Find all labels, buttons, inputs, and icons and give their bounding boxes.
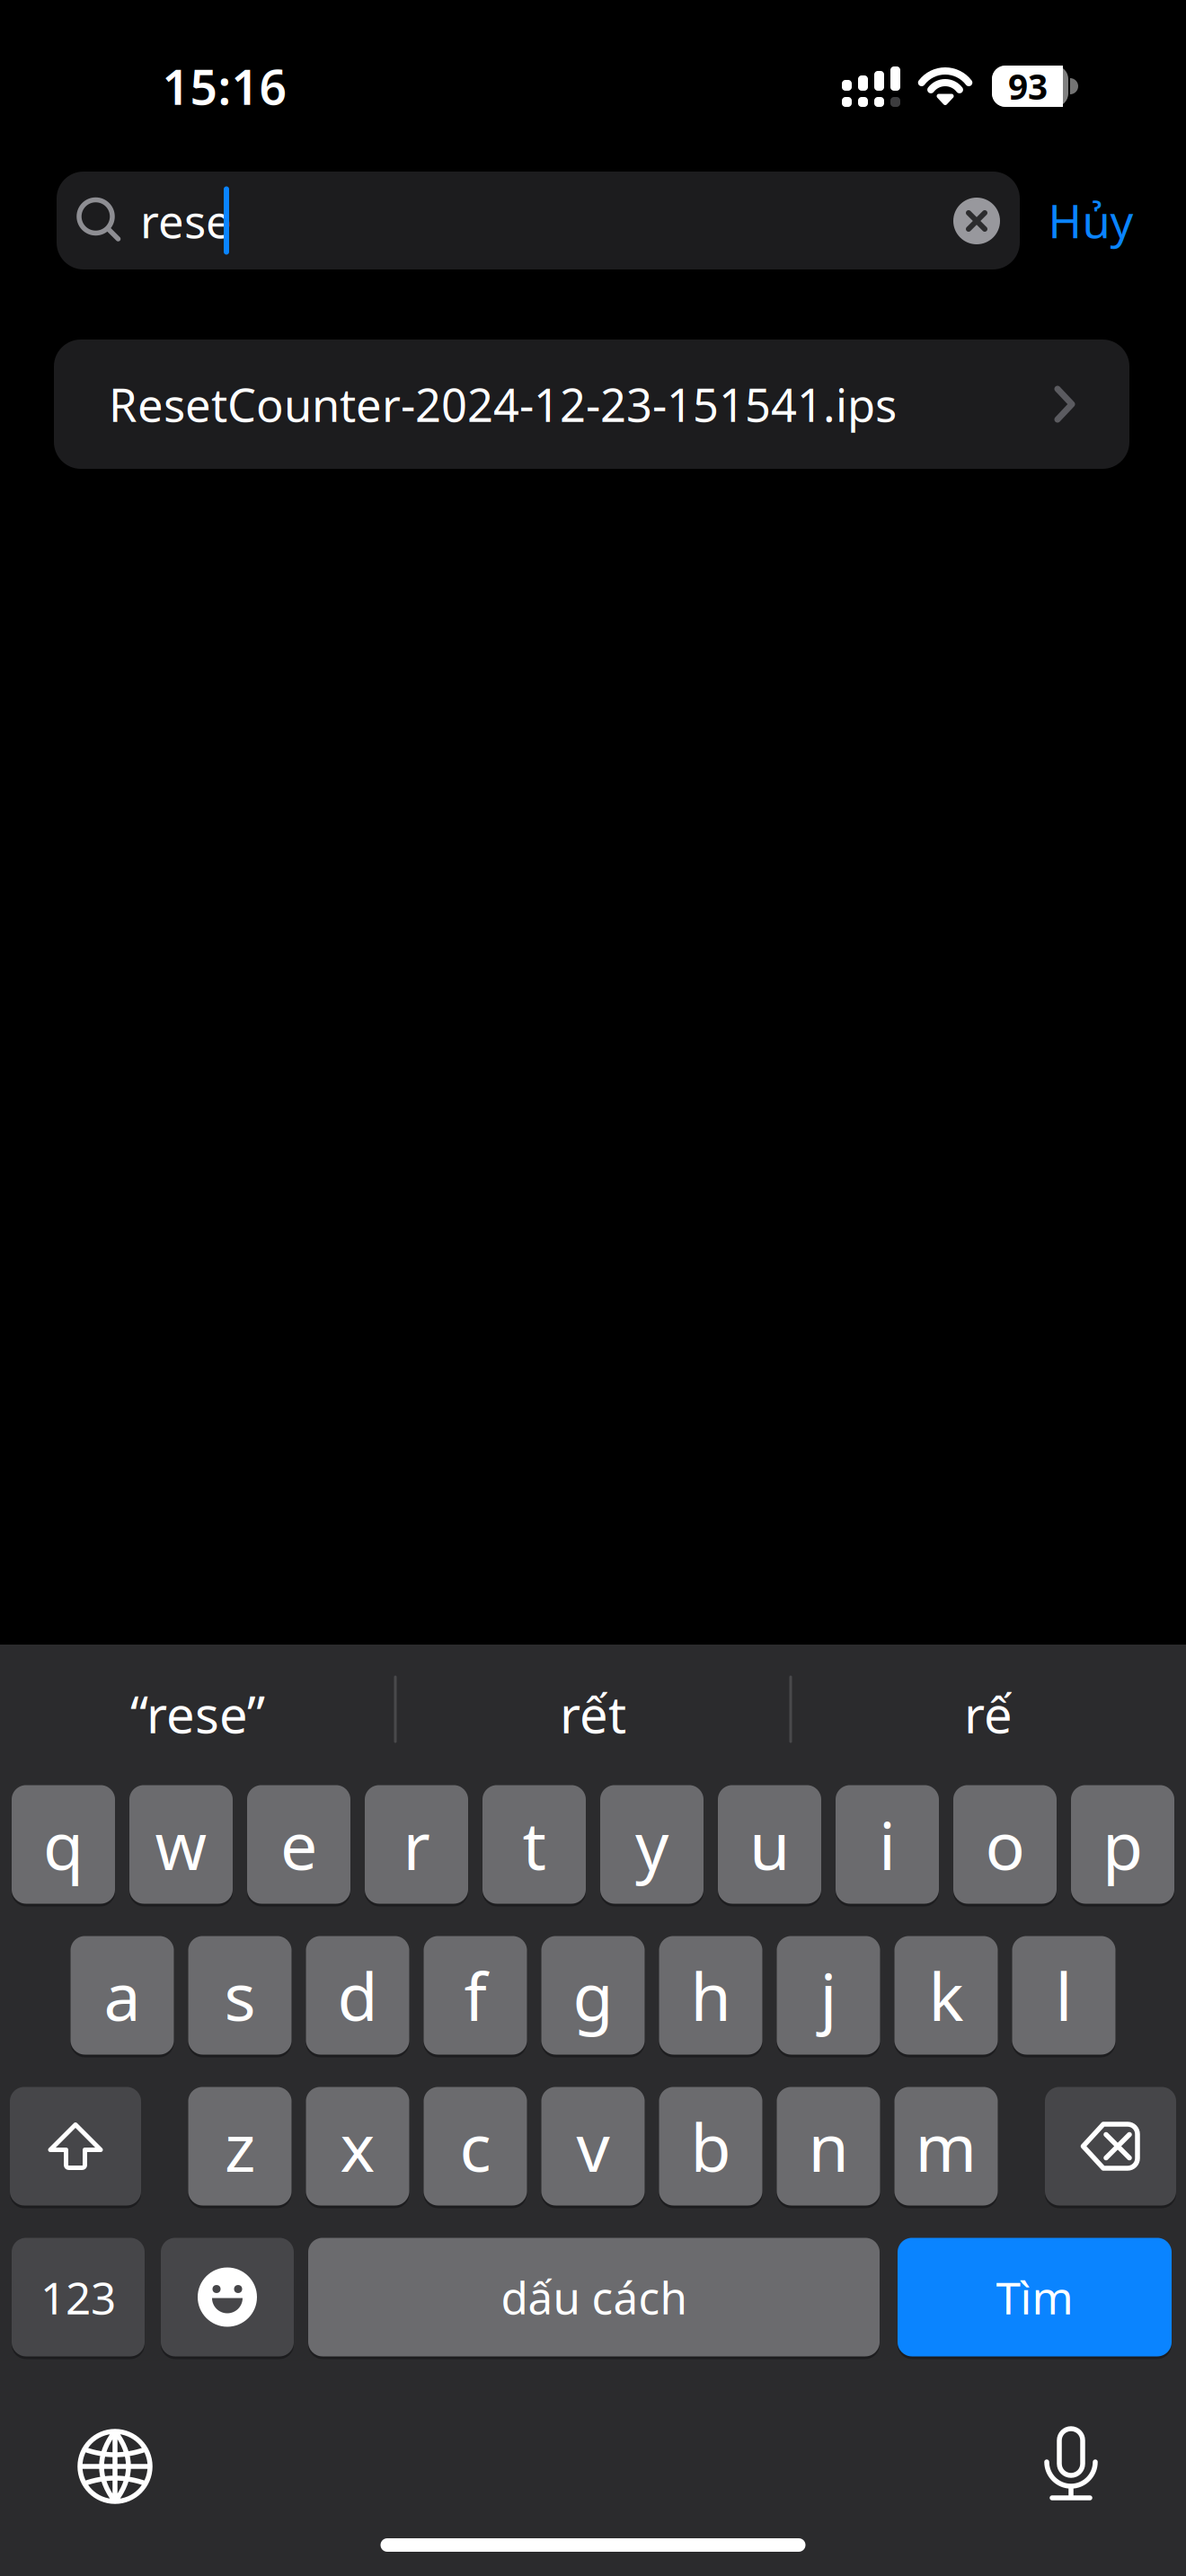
button[interactable]: Next keyboard: [61, 2413, 169, 2520]
button[interactable]: o: [953, 1785, 1057, 1906]
button[interactable]: p: [1071, 1785, 1174, 1906]
button[interactable]: t: [482, 1785, 586, 1906]
button[interactable]: Search: [57, 172, 1020, 269]
staticText: “rese”: [130, 1680, 265, 1747]
button[interactable]: Clear text: [953, 198, 1000, 244]
button[interactable]: e: [247, 1785, 350, 1906]
button[interactable]: g: [541, 1936, 645, 2057]
staticText: f: [464, 1952, 487, 2039]
button[interactable]: dấu cách: [308, 2238, 880, 2359]
button[interactable]: k: [894, 1936, 998, 2057]
staticText: p: [1102, 1801, 1143, 1888]
button[interactable]: b: [659, 2087, 762, 2208]
staticText: t: [522, 1801, 546, 1888]
staticText: a: [104, 1952, 141, 2039]
button[interactable]: v: [541, 2087, 645, 2208]
button[interactable]: l: [1012, 1936, 1115, 2057]
staticText: k: [929, 1952, 964, 2039]
staticText: r: [403, 1801, 430, 1888]
button[interactable]: a: [71, 1936, 174, 2057]
staticText: g: [573, 1952, 613, 2039]
button[interactable]: d: [306, 1936, 409, 2057]
button[interactable]: i: [836, 1785, 939, 1906]
staticText: u: [749, 1801, 790, 1888]
button[interactable]: Delete: [1045, 2087, 1176, 2208]
staticText: b: [690, 2102, 731, 2190]
button[interactable]: y: [600, 1785, 704, 1906]
button[interactable]: q: [12, 1785, 115, 1906]
staticText: rế: [964, 1680, 1013, 1747]
button[interactable]: c: [424, 2087, 527, 2208]
button[interactable]: s: [188, 1936, 292, 2057]
staticText: y: [635, 1801, 668, 1888]
staticText: l: [1055, 1952, 1072, 2039]
staticText: z: [225, 2102, 255, 2190]
staticText: i: [879, 1801, 896, 1888]
staticText: e: [280, 1801, 317, 1888]
button[interactable]: Emoji: [161, 2238, 294, 2359]
button[interactable]: r: [365, 1785, 468, 1906]
staticText: ResetCounter-2024-12-23-151541.ips: [109, 374, 897, 434]
staticText: Hủy: [1048, 190, 1133, 251]
staticText: rese: [140, 190, 232, 251]
staticText: c: [460, 2102, 491, 2190]
button[interactable]: u: [718, 1785, 821, 1906]
button[interactable]: x: [306, 2087, 409, 2208]
staticText: q: [43, 1801, 84, 1888]
staticText: m: [915, 2102, 977, 2190]
staticText: 93: [1008, 63, 1048, 109]
staticText: v: [576, 2102, 610, 2190]
button[interactable]: rết: [404, 1664, 782, 1763]
button[interactable]: m: [894, 2087, 998, 2208]
button[interactable]: rế: [800, 1664, 1177, 1763]
button[interactable]: h: [659, 1936, 762, 2057]
staticText: Tìm: [996, 2268, 1073, 2326]
staticText: rết: [560, 1680, 626, 1747]
button[interactable]: Shift: [10, 2087, 141, 2208]
staticText: n: [808, 2102, 849, 2190]
button[interactable]: 123: [12, 2238, 145, 2359]
staticText: j: [820, 1952, 837, 2039]
staticText: s: [224, 1952, 256, 2039]
button[interactable]: Tìm: [898, 2238, 1172, 2359]
staticText: o: [985, 1801, 1025, 1888]
button[interactable]: j: [777, 1936, 880, 2057]
button[interactable]: “rese”: [9, 1664, 386, 1763]
button[interactable]: w: [129, 1785, 233, 1906]
button[interactable]: Dictation: [1026, 2411, 1116, 2519]
button[interactable]: Hủy: [1048, 190, 1133, 251]
staticText: x: [340, 2102, 375, 2190]
staticText: 15:16: [162, 54, 287, 118]
button[interactable]: z: [188, 2087, 292, 2208]
staticText: d: [337, 1952, 378, 2039]
staticText: dấu cách: [501, 2268, 687, 2326]
button[interactable]: n: [777, 2087, 880, 2208]
button[interactable]: f: [424, 1936, 527, 2057]
staticText: h: [690, 1952, 731, 2039]
staticText: 123: [40, 2268, 116, 2326]
staticText: w: [155, 1801, 207, 1888]
button[interactable]: ResetCounter-2024-12-23-151541.ips: [54, 340, 1129, 469]
